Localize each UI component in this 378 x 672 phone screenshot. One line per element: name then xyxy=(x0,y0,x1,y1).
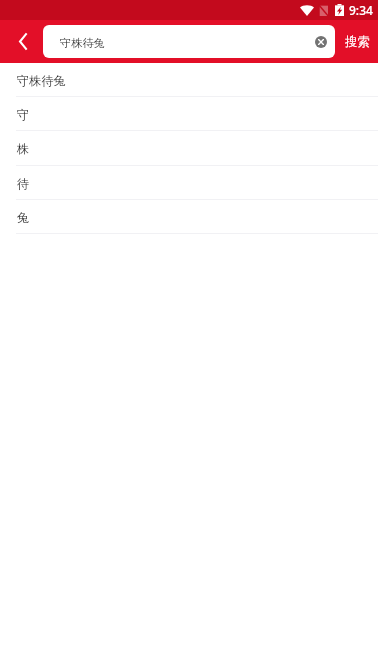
staticText: 搜索 xyxy=(345,34,370,49)
button[interactable]: 兔 xyxy=(0,200,378,233)
button[interactable]: 守株待兔 xyxy=(0,63,378,96)
staticText: 9:34 xyxy=(349,2,373,18)
button[interactable]: 待 xyxy=(0,166,378,199)
staticText: 兔 xyxy=(17,210,30,225)
button[interactable]: 株 xyxy=(0,131,378,165)
staticText: 守株待兔 xyxy=(60,36,105,50)
button[interactable]: 守 xyxy=(0,97,378,130)
staticText: 待 xyxy=(17,176,30,191)
button[interactable]: Clear search text xyxy=(315,36,327,48)
staticText: 守 xyxy=(17,107,30,122)
staticText: 株 xyxy=(17,141,30,156)
button[interactable]: Back xyxy=(0,20,43,63)
button[interactable]: 搜索 xyxy=(335,20,378,63)
staticText: 守株待兔 xyxy=(17,73,66,88)
button[interactable]: 守株待兔 xyxy=(43,25,335,58)
